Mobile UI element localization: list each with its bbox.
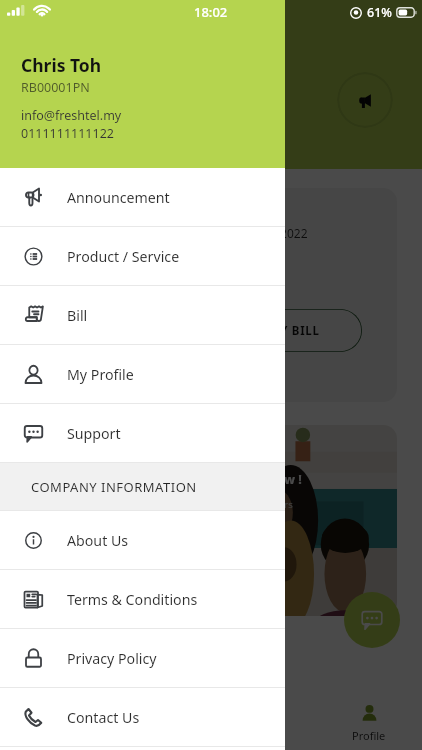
staticText: Due on 31 Dec 2022 xyxy=(195,225,308,241)
staticText: Profile xyxy=(352,728,386,743)
button[interactable]: Bill xyxy=(105,695,210,750)
staticText: About Us xyxy=(67,531,129,550)
staticText: Terms & Conditions xyxy=(67,590,198,609)
staticText: 61% xyxy=(367,4,392,21)
button[interactable]: Bill xyxy=(0,286,285,345)
staticText: Special offers xyxy=(233,498,293,511)
button[interactable]: Home xyxy=(0,695,105,750)
button[interactable]: Product / Service xyxy=(0,227,285,286)
staticText: Subscribe now ! xyxy=(205,471,302,488)
button[interactable]: Profile xyxy=(316,695,422,750)
staticText: Bill xyxy=(67,306,88,325)
staticText: Support xyxy=(67,424,121,443)
staticText: COMPANY INFORMATION xyxy=(31,478,197,496)
button[interactable]: Announcement xyxy=(0,168,285,227)
button[interactable]: Support xyxy=(210,695,316,750)
staticText: My Profile xyxy=(67,365,134,384)
button[interactable]: Announcements xyxy=(337,72,393,128)
button[interactable]: My Profile xyxy=(0,345,285,404)
button[interactable]: PAY BILL xyxy=(222,309,362,352)
staticText: Privacy Policy xyxy=(67,649,157,668)
button[interactable]: Support xyxy=(0,404,285,463)
staticText: info@freshtel.my xyxy=(21,107,122,124)
button[interactable]: Chat support xyxy=(344,592,400,648)
staticText: 18:02 xyxy=(194,3,228,21)
button[interactable]: Privacy Policy xyxy=(0,629,285,688)
button[interactable]: Terms & Conditions xyxy=(0,570,285,629)
staticText: PAY BILL xyxy=(265,323,320,339)
staticText: RB00001PN xyxy=(21,79,90,96)
staticText: Contact Us xyxy=(67,708,140,727)
button[interactable] xyxy=(0,0,422,750)
button[interactable]: About Us xyxy=(0,511,285,570)
staticText: Product / Service xyxy=(67,247,180,266)
staticText: Announcement xyxy=(67,188,170,207)
staticText: 0111111111122 xyxy=(21,125,114,142)
staticText: Chris Toh xyxy=(21,53,102,77)
button[interactable]: Contact Us xyxy=(0,688,285,747)
